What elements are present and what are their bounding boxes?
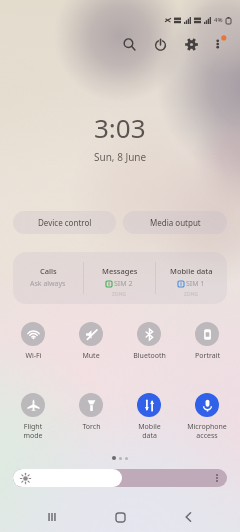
staticText: Ask always [30, 279, 66, 289]
button[interactable]: Recent apps [32, 501, 72, 532]
button[interactable]: Mobile data [156, 252, 227, 298]
button[interactable]: More options [211, 36, 227, 52]
button[interactable]: Bluetooth [120, 318, 178, 361]
button[interactable]: Brightness settings [210, 471, 224, 485]
staticText: Flight mode [23, 422, 43, 440]
button[interactable]: Portrait [178, 318, 236, 361]
staticText: ZONG [112, 291, 127, 298]
staticText: Mute [82, 351, 100, 361]
button[interactable]: Calls [13, 252, 83, 289]
staticText: Wi-Fi [25, 351, 42, 361]
button[interactable]: Microphone access [178, 389, 236, 440]
staticText: Media output [150, 217, 201, 228]
button[interactable]: Media output [123, 211, 227, 234]
staticText: Sun, 8 June [94, 150, 147, 164]
staticText: Portrait [195, 351, 220, 361]
button[interactable]: Home [100, 501, 140, 532]
button[interactable]: Wi-Fi [4, 318, 62, 361]
staticText: 3:03 [94, 110, 146, 145]
staticText: Calls [40, 266, 57, 276]
staticText: Device control [38, 217, 92, 228]
button[interactable]: Settings [182, 35, 200, 53]
staticText: Torch [82, 422, 101, 432]
button[interactable]: Messages [84, 252, 155, 298]
staticText: Mobile data [138, 422, 161, 440]
button[interactable]: Brightness [13, 469, 227, 487]
staticText: Mobile data [170, 266, 213, 276]
button[interactable]: Power [151, 35, 169, 53]
button[interactable]: Search [120, 35, 138, 53]
button[interactable]: Flight mode [4, 389, 62, 440]
staticText: SIM 2 [114, 279, 133, 289]
button[interactable]: Device control [13, 211, 116, 234]
button[interactable]: Mobile data [120, 389, 178, 440]
staticText: Bluetooth [133, 351, 166, 361]
button[interactable]: Back [168, 501, 208, 532]
staticText: ZONG [184, 291, 199, 298]
staticText: Microphone access [187, 422, 227, 440]
staticText: SIM 1 [186, 279, 205, 289]
staticText: 4% [214, 16, 223, 24]
button[interactable]: Mute [62, 318, 120, 361]
button[interactable]: Torch [62, 389, 120, 432]
staticText: Messages [102, 266, 138, 276]
